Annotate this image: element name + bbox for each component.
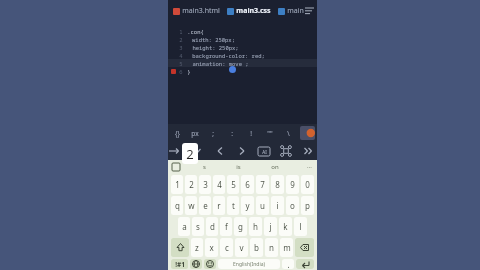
button[interactable]: px	[186, 124, 204, 142]
button[interactable]: r	[213, 196, 225, 215]
button[interactable]: s	[192, 217, 204, 236]
staticText: s	[196, 221, 200, 232]
button[interactable]: main	[277, 6, 305, 16]
button[interactable]: n	[265, 238, 278, 257]
staticText: a	[182, 221, 187, 232]
button[interactable]: ;	[204, 124, 222, 142]
staticText: is	[236, 163, 241, 171]
staticText: ;	[212, 129, 214, 138]
staticText: 6	[179, 68, 183, 75]
other: Menu	[305, 7, 314, 16]
button[interactable]: x	[205, 238, 218, 257]
staticText: 8	[275, 179, 280, 190]
staticText: l	[299, 221, 302, 232]
button[interactable]: k	[279, 217, 292, 236]
button[interactable]: \	[279, 124, 298, 142]
button[interactable]: Collapse	[191, 145, 203, 157]
button[interactable]: 4	[213, 175, 225, 194]
button[interactable]: 7	[256, 175, 269, 194]
button[interactable]: 5	[227, 175, 239, 194]
staticText: 0	[305, 179, 310, 190]
staticText: u	[260, 200, 265, 211]
button[interactable]: o	[286, 196, 299, 215]
button[interactable]: 3	[199, 175, 211, 194]
button[interactable]: 6	[241, 175, 254, 194]
button[interactable]: 9	[286, 175, 299, 194]
button[interactable]: i	[271, 196, 284, 215]
staticText: px	[191, 129, 199, 138]
button[interactable]: Tab	[168, 145, 180, 157]
button[interactable]: b	[250, 238, 263, 257]
button[interactable]: g	[234, 217, 247, 236]
staticText: h	[253, 221, 258, 232]
staticText: }	[187, 68, 191, 75]
button[interactable]: Backspace	[295, 238, 314, 257]
button[interactable]: e	[199, 196, 211, 215]
staticText: 2	[179, 36, 183, 43]
button[interactable]: 1	[171, 175, 183, 194]
staticText: o	[290, 200, 295, 211]
staticText: animation: move ;	[192, 60, 249, 67]
staticText: .	[287, 259, 290, 269]
button[interactable]: t	[227, 196, 239, 215]
button[interactable]: Shift	[171, 238, 189, 257]
button[interactable]: .	[282, 259, 294, 269]
staticText: main3.html	[182, 6, 220, 16]
button[interactable]: f	[220, 217, 232, 236]
staticText: k	[283, 221, 288, 232]
staticText: ···	[307, 163, 312, 171]
button[interactable]: l	[294, 217, 307, 236]
staticText: !#1	[175, 260, 185, 269]
button[interactable]: Clipboard	[172, 163, 180, 171]
button[interactable]: :	[222, 124, 241, 142]
button[interactable]: 0	[301, 175, 314, 194]
button[interactable]	[204, 259, 216, 269]
button[interactable]: a	[178, 217, 190, 236]
button[interactable]: h	[249, 217, 262, 236]
staticText: English(India)	[233, 261, 265, 268]
staticText: :	[231, 129, 233, 138]
staticText: b	[254, 242, 259, 253]
button[interactable]: d	[206, 217, 218, 236]
staticText: 4	[179, 52, 183, 59]
staticText: c	[225, 242, 229, 253]
button[interactable]: u	[256, 196, 269, 215]
button[interactable]: p	[301, 196, 314, 215]
button[interactable]: !#1	[171, 259, 188, 269]
button[interactable]: main3.css	[226, 6, 272, 16]
staticText: i	[276, 200, 279, 211]
button[interactable]: Command	[280, 145, 292, 157]
button[interactable]: w	[185, 196, 197, 215]
button[interactable]: v	[235, 238, 248, 257]
button[interactable]: q	[171, 196, 183, 215]
button[interactable]: y	[241, 196, 254, 215]
button[interactable]: c	[220, 238, 233, 257]
staticText: 7	[260, 179, 265, 190]
button[interactable]: main3.html	[172, 6, 221, 16]
staticText: height: 250px;	[192, 44, 239, 51]
staticText: j	[269, 221, 272, 232]
staticText: 4	[217, 179, 222, 190]
button[interactable]: !	[241, 124, 260, 142]
button[interactable]: Preview	[300, 126, 315, 140]
staticText: on	[271, 163, 279, 171]
button[interactable]: 2	[185, 175, 197, 194]
button[interactable]: Previous	[214, 145, 226, 157]
button[interactable]: j	[264, 217, 277, 236]
button[interactable]: 8	[271, 175, 284, 194]
button[interactable]: More	[302, 145, 314, 157]
staticText: 1	[175, 179, 180, 190]
staticText: f	[225, 221, 228, 232]
button[interactable]: English(India)	[218, 259, 280, 269]
staticText: x	[209, 242, 214, 253]
button[interactable]: z	[191, 238, 203, 257]
button[interactable]: Next	[236, 145, 248, 157]
button[interactable]: ""	[260, 124, 279, 142]
button[interactable]: AI	[258, 147, 270, 156]
staticText: 5	[179, 60, 183, 67]
button[interactable]: {}	[168, 124, 186, 142]
button[interactable]: Enter	[296, 259, 314, 269]
button[interactable]: m	[280, 238, 293, 257]
button[interactable]	[190, 259, 202, 269]
staticText: width: 250px;	[192, 36, 235, 43]
